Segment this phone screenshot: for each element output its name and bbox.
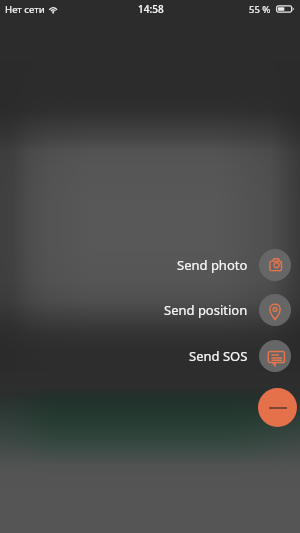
- button[interactable]: Send photo: [259, 249, 291, 281]
- staticText: 55 %: [249, 3, 271, 16]
- button[interactable]: Send position: [164, 301, 248, 319]
- staticText: 14:58: [138, 2, 164, 16]
- staticText: Нет сети: [5, 3, 45, 16]
- button[interactable]: Close actions menu: [258, 388, 297, 427]
- button[interactable]: Send photo: [177, 256, 248, 274]
- button[interactable]: Send SOS: [189, 347, 248, 365]
- button[interactable]: Send SOS: [259, 340, 291, 372]
- button[interactable]: Send position: [259, 294, 291, 326]
